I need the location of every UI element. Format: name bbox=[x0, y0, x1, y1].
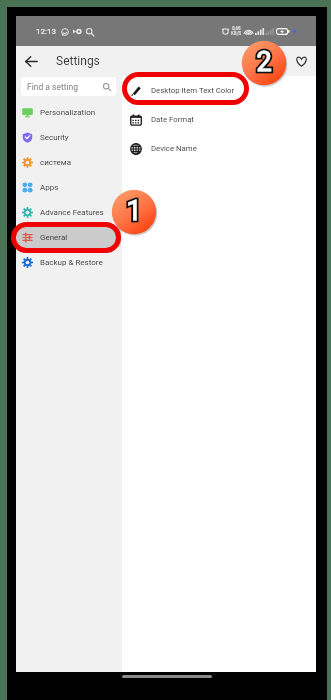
staticText: Settings bbox=[56, 54, 100, 68]
button[interactable]: Personalization bbox=[17, 102, 121, 123]
staticText: 12:13 bbox=[36, 27, 56, 36]
staticText: 1 bbox=[126, 195, 142, 227]
staticText: Date Format bbox=[151, 115, 194, 124]
button[interactable]: General bbox=[17, 227, 121, 248]
staticText: Find a setting bbox=[27, 82, 79, 92]
staticText: система bbox=[40, 158, 72, 167]
button[interactable]: Backup & Restore bbox=[17, 252, 121, 273]
button[interactable]: Date Format bbox=[122, 105, 316, 134]
button[interactable]: Device Name bbox=[122, 134, 316, 163]
staticText: General bbox=[40, 233, 68, 242]
button[interactable]: Desktop Item Text Color bbox=[122, 76, 316, 105]
staticText: Desktop Item Text Color bbox=[151, 86, 235, 95]
staticText: 2 bbox=[256, 46, 272, 78]
staticText: Device Name bbox=[151, 144, 197, 153]
button[interactable]: Back bbox=[16, 46, 46, 76]
button[interactable]: Advance Features bbox=[17, 202, 121, 223]
button[interactable]: Apps bbox=[17, 177, 121, 198]
staticText: Personalization bbox=[40, 108, 96, 117]
button[interactable]: Favorite bbox=[286, 46, 316, 76]
staticText: Security bbox=[40, 133, 69, 142]
staticText: KB/S bbox=[231, 31, 242, 36]
button[interactable]: Security bbox=[17, 127, 121, 148]
button[interactable]: Find a setting bbox=[21, 77, 116, 96]
button[interactable]: система bbox=[17, 152, 121, 173]
staticText: Backup & Restore bbox=[40, 258, 103, 267]
staticText: Apps bbox=[40, 183, 59, 192]
staticText: Advance Features bbox=[40, 208, 104, 217]
staticText: 1 bbox=[126, 195, 142, 227]
staticText: 2 bbox=[256, 46, 272, 78]
staticText: 0,68 bbox=[232, 26, 241, 31]
